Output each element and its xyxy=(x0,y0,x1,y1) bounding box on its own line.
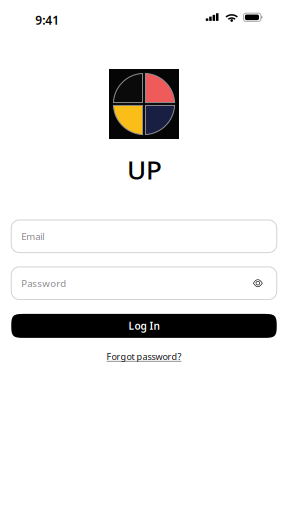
button[interactable]: Log In xyxy=(11,314,277,338)
staticText: Forgot password? xyxy=(106,350,181,363)
button[interactable]: Forgot password? xyxy=(104,348,183,365)
staticText: Password xyxy=(21,277,66,290)
staticText: 9:41 xyxy=(35,12,59,28)
staticText: UP xyxy=(127,152,162,187)
staticText: Email xyxy=(21,230,44,243)
staticText: Log In xyxy=(128,319,159,333)
